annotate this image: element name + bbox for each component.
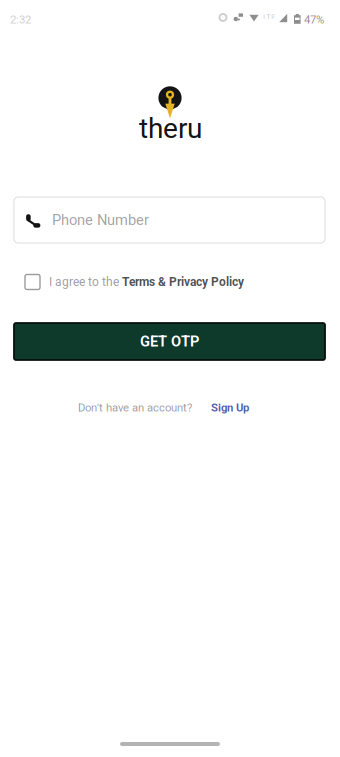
button[interactable]: Phone Number <box>14 197 325 243</box>
staticText: 47% <box>304 13 324 26</box>
staticText: theru <box>139 112 202 145</box>
button[interactable]: Sign Up <box>211 401 249 414</box>
button[interactable]: GET OTP <box>14 323 325 360</box>
staticText: Terms & Privacy Policy <box>122 275 244 289</box>
staticText: I agree to the <box>49 275 122 289</box>
staticText: Sign Up <box>211 401 249 414</box>
staticText: Phone Number <box>52 211 149 229</box>
button[interactable]: I agree to the <box>25 273 315 291</box>
staticText: Don't have an account? <box>78 401 192 414</box>
staticText: 2:32 <box>10 13 31 26</box>
staticText: LTE <box>263 12 276 21</box>
staticText: GET OTP <box>140 333 199 350</box>
